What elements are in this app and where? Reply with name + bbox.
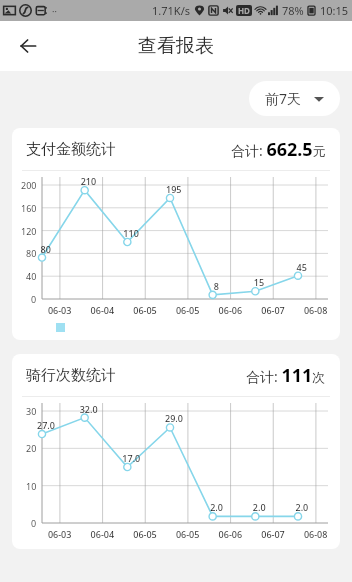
staticText: 支付金额统计 <box>26 140 116 159</box>
staticText: 合计: 662.5元 <box>231 137 326 162</box>
staticText: 1.71K/s <box>152 3 190 18</box>
staticText: 查看报表 <box>138 34 214 58</box>
staticText: ·· <box>52 5 57 17</box>
button[interactable]: 前7天 <box>249 81 340 116</box>
staticText: HD <box>238 5 250 16</box>
staticText: 10:15 <box>320 3 349 18</box>
staticText: 合计: 111次 <box>246 363 326 388</box>
staticText: 骑行次数统计 <box>26 366 116 385</box>
button[interactable]: Back <box>8 26 48 66</box>
staticText: 前7天 <box>265 89 302 108</box>
staticText: 78% <box>282 3 304 18</box>
